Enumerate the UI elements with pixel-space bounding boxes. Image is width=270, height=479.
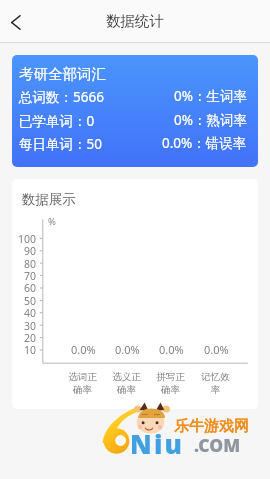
staticText: 乐牛游戏网	[174, 417, 249, 436]
button[interactable]: 考研全部词汇	[12, 55, 258, 167]
staticText: 选义正 确率	[112, 371, 141, 396]
staticText: 数据统计	[106, 12, 164, 30]
staticText: 100	[18, 232, 37, 246]
staticText: 每日单词：50	[19, 135, 102, 153]
staticText: 0%：生词率	[174, 87, 247, 105]
staticText: 70	[24, 269, 37, 283]
staticText: 40	[24, 306, 37, 320]
staticText: 10	[24, 343, 37, 357]
staticText: 0.0%	[159, 342, 184, 357]
staticText: 80	[24, 257, 37, 271]
staticText: 0.0%	[115, 342, 140, 357]
staticText: 已学单词：0	[19, 112, 95, 130]
staticText: 30	[24, 319, 37, 333]
staticText: 50	[24, 294, 37, 308]
staticText: 记忆效 率	[201, 371, 230, 396]
staticText: %	[48, 215, 56, 228]
staticText: Niu	[130, 426, 185, 461]
staticText: 0.0%	[71, 342, 96, 357]
staticText: 20	[24, 331, 37, 345]
staticText: 90	[24, 244, 37, 258]
staticText: 选词正 确率	[68, 371, 97, 396]
staticText: 拼写正 确率	[156, 371, 185, 396]
staticText: 数据展示	[22, 191, 76, 208]
staticText: .COM	[194, 433, 241, 457]
button[interactable]: Back	[0, 1, 31, 43]
staticText: 60	[24, 281, 37, 295]
staticText: 考研全部词汇	[19, 65, 106, 83]
staticText: 0.0%：错误率	[162, 134, 247, 152]
staticText: 0.0%	[204, 342, 229, 357]
staticText: 总词数：5666	[19, 88, 104, 106]
staticText: 0%：熟词率	[174, 111, 247, 129]
